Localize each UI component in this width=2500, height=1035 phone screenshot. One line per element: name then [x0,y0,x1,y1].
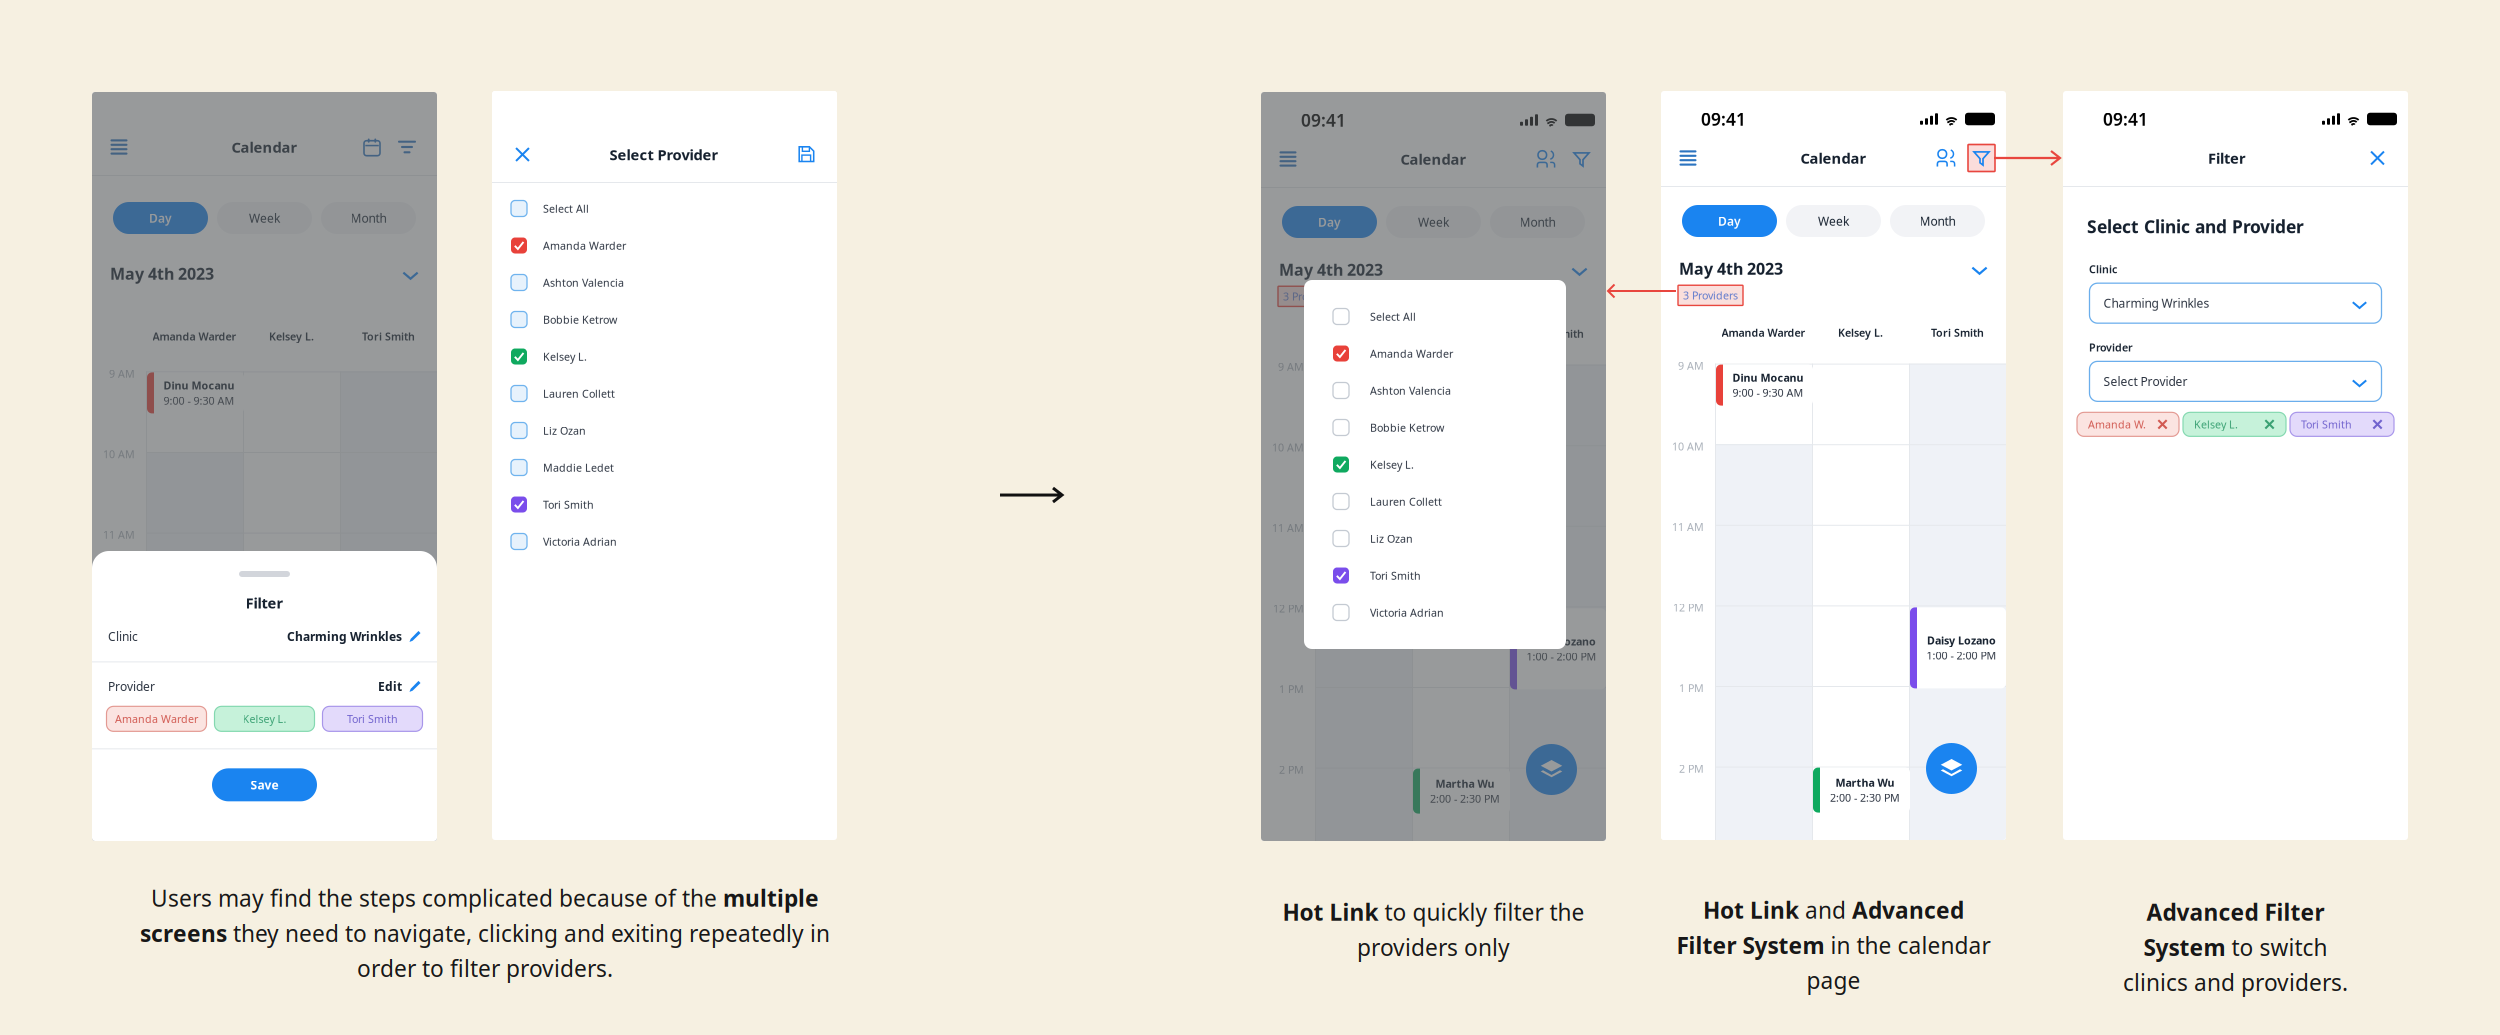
button[interactable]: Week [217,202,312,234]
staticText: 11 AM [1672,520,1704,534]
button[interactable]: 3 Providers [1278,286,1343,306]
staticText: 9:00 - 9:30 AM [1332,387,1403,401]
button[interactable]: Day [113,202,208,234]
button[interactable]: Providers [1937,148,1959,167]
staticText: Tori Smith [362,329,415,343]
button[interactable]: Amanda Warder [1304,335,1566,372]
button[interactable]: Filter [1568,145,1595,172]
button[interactable]: Select Provider [2089,361,2381,401]
button[interactable]: Change date [1971,262,1988,275]
button[interactable]: Month [321,202,416,234]
staticText: Day [1318,214,1341,230]
staticText: and [1799,895,1852,925]
button[interactable]: Save [797,145,815,163]
button[interactable]: Select All [1304,298,1566,335]
button[interactable]: Layers [1926,743,1977,794]
staticText: Hot Link [1282,897,1378,927]
staticText: 2:00 - 2:30 PM [261,798,331,813]
staticText: Kelsey L. [543,349,587,364]
staticText: Daisy Lozano [1927,633,1996,647]
button[interactable]: Week [1786,205,1881,237]
staticText: 09:41 [1301,108,1346,131]
staticText: Advanced Filter [2146,897,2324,927]
button[interactable]: Day [1282,206,1377,238]
button[interactable]: Tori Smith [492,486,837,523]
staticText: Amanda Warder [1721,325,1805,340]
button[interactable]: Providers [1537,149,1559,168]
staticText: Dinu Mocanu [163,378,234,392]
staticText: Kelsey L. [2194,417,2238,431]
staticText: Calendar [1400,149,1466,169]
button[interactable]: Charming Wrinkles [2089,283,2381,323]
staticText: 1 PM [1279,682,1304,696]
staticText: 10 AM [103,447,135,461]
button[interactable]: Ashton Valencia [1304,372,1566,409]
button[interactable]: Edit providers [402,680,421,692]
button[interactable]: Lauren Collett [492,375,837,412]
staticText: 1:00 - 2:00 PM [1526,649,1596,664]
button[interactable]: Victoria Adrian [1304,594,1566,631]
button[interactable]: Menu [1279,149,1297,168]
staticText: screens [140,918,227,948]
staticText: 1 PM [1679,681,1704,695]
button[interactable]: Day [1682,205,1777,237]
staticText: Select Provider [2103,373,2187,389]
button[interactable]: Change date [402,267,419,280]
button[interactable]: Tori Smith [1304,557,1566,594]
button[interactable]: 3 Providers [1678,285,1743,305]
button[interactable]: Liz Ozan [1304,520,1566,557]
button[interactable]: Month [1890,205,1985,237]
staticText: Victoria Adrian [543,534,617,549]
staticText: 9 AM [1678,359,1704,373]
button[interactable]: Kelsey L. [1304,446,1566,483]
staticText: Save [250,777,278,793]
staticText: Select Provider [609,145,718,164]
button[interactable]: Filter [1968,144,1995,171]
staticText: page [1806,965,1860,995]
staticText: Liz Ozan [543,423,586,438]
staticText: providers only [1357,932,1510,962]
staticText: Martha Wu [1835,775,1894,790]
button[interactable]: Menu [1679,148,1697,167]
staticText: Day [149,210,172,226]
staticText: Select Clinic and Provider [2087,215,2304,238]
button[interactable]: Kelsey L. [2183,412,2286,436]
staticText: 9 AM [109,366,135,381]
button[interactable]: Bobbie Ketrow [1304,409,1566,446]
staticText: 09:41 [1701,107,1746,130]
staticText: Filter System [1676,930,1824,960]
button[interactable]: Layers [1526,744,1577,795]
button[interactable]: Week [1386,206,1481,238]
button[interactable]: Maddie Ledet [492,449,837,486]
button[interactable]: Liz Ozan [492,412,837,449]
button[interactable]: Victoria Adrian [492,523,837,560]
button[interactable]: Close [2369,149,2386,166]
button[interactable]: Ashton Valencia [492,264,837,301]
button[interactable]: Tori Smith [2290,412,2394,436]
button[interactable]: Close [514,146,531,163]
button[interactable]: Calendar [363,137,381,156]
staticText: order to filter providers. [357,953,613,983]
button[interactable]: Amanda W. [2077,412,2179,436]
staticText: Clinic [108,628,138,644]
button[interactable]: Edit clinic [402,630,421,642]
button[interactable]: Month [1490,206,1585,238]
staticText: Daisy Lozano [358,641,427,655]
button[interactable]: Kelsey L. [492,338,837,375]
button[interactable]: Save [212,768,317,801]
staticText: Tori Smith [543,497,594,512]
button[interactable]: Select All [492,190,837,227]
button[interactable]: Lauren Collett [1304,483,1566,520]
staticText: 9 AM [1278,360,1304,374]
button[interactable]: Filter [398,137,416,156]
button[interactable]: Change date [1571,263,1588,276]
button[interactable]: Bobbie Ketrow [492,301,837,338]
staticText: Ashton Valencia [1370,383,1451,398]
button[interactable]: Amanda Warder [492,227,837,264]
staticText: Month [1919,213,1955,229]
button[interactable]: Menu [110,137,128,156]
